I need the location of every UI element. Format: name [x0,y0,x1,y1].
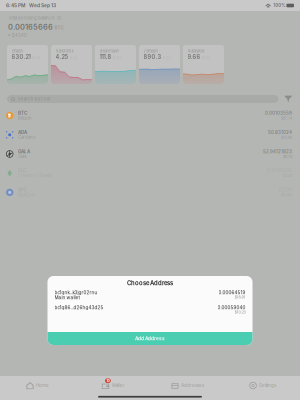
staticText: 50.831024 [268,130,292,135]
staticText: Main wallet [54,295,79,300]
staticText: Ethash [11,48,22,53]
button[interactable]: Settings [225,380,300,391]
staticText: 0.00059040 [217,305,245,310]
button[interactable]: Addresses [150,380,225,391]
staticText: Add Address [135,336,165,341]
button[interactable]: Beamhash [95,45,136,84]
button[interactable]: APE [0,183,300,202]
button[interactable]: ADA [0,125,300,144]
staticText: Wed Sep 13 [29,3,56,8]
staticText: ≈ $43.40 [8,33,27,38]
button[interactable]: Randomx [51,45,92,84]
staticText: 6:45 PM [6,3,25,8]
staticText: Autolykos [187,48,204,53]
staticText: Zelhash [143,48,157,53]
button[interactable]: Zelhash [139,45,180,84]
button[interactable]: bc1q86...d26hg43d25 [47,305,252,319]
staticText: Choose Address [127,279,173,287]
staticText: CLC [18,168,26,173]
staticText: $0.74 [283,154,292,159]
button[interactable]: BTC [0,106,300,125]
button[interactable]: Ethash [7,45,48,84]
staticText: 111.8 [99,54,111,60]
button[interactable]: bc1qnk...k3jgr02rnu [47,290,252,305]
staticText: APE [18,187,27,193]
staticText: Cardano [18,135,36,140]
staticText: 52.94121823 [263,149,292,154]
staticText: $27.14 [281,116,292,120]
staticText: Gala [18,154,26,159]
staticText: 890.3 [143,54,161,60]
button[interactable]: Autolykos [183,45,224,84]
staticText: BTC [18,110,27,116]
staticText: BTC [55,25,64,31]
staticText: bc1qnk...k3jgr02rnu [54,290,97,295]
staticText: Bitcoin [18,115,32,121]
staticText: Randomx [55,48,73,53]
staticText: 0.00064519 [218,290,245,295]
staticText: GALA [18,149,30,154]
staticText: Total pending balance [8,15,55,21]
staticText: 9.66 [187,54,200,60]
staticText: 630.21 [11,54,30,60]
staticText: bc1q86...d26hg43d25 [54,305,103,310]
staticText: 10 [106,379,109,383]
staticText: Wallet [111,383,123,388]
staticText: Settings [259,383,276,388]
staticText: $10.23 [234,310,245,315]
button[interactable]: Wallet [75,380,150,391]
staticText: Beamhash [99,48,118,53]
staticText: 0.00165666 [8,22,53,31]
button[interactable]: GALA [0,144,300,164]
staticText: Search by coin [18,96,51,102]
staticText: ADA [18,130,27,135]
staticText: Addresses [181,383,204,388]
staticText: $16.91 [234,295,245,300]
button[interactable]: Home [0,380,75,391]
button[interactable]: Filter [284,95,292,103]
staticText: 100% [273,3,285,8]
staticText: $12.62 [281,135,292,140]
button[interactable]: Add Address [47,332,252,345]
staticText: Home [36,383,49,388]
staticText: 4.25 [55,54,68,60]
staticText: 0.00103559 [265,110,292,116]
button[interactable]: Balance info [57,16,61,20]
